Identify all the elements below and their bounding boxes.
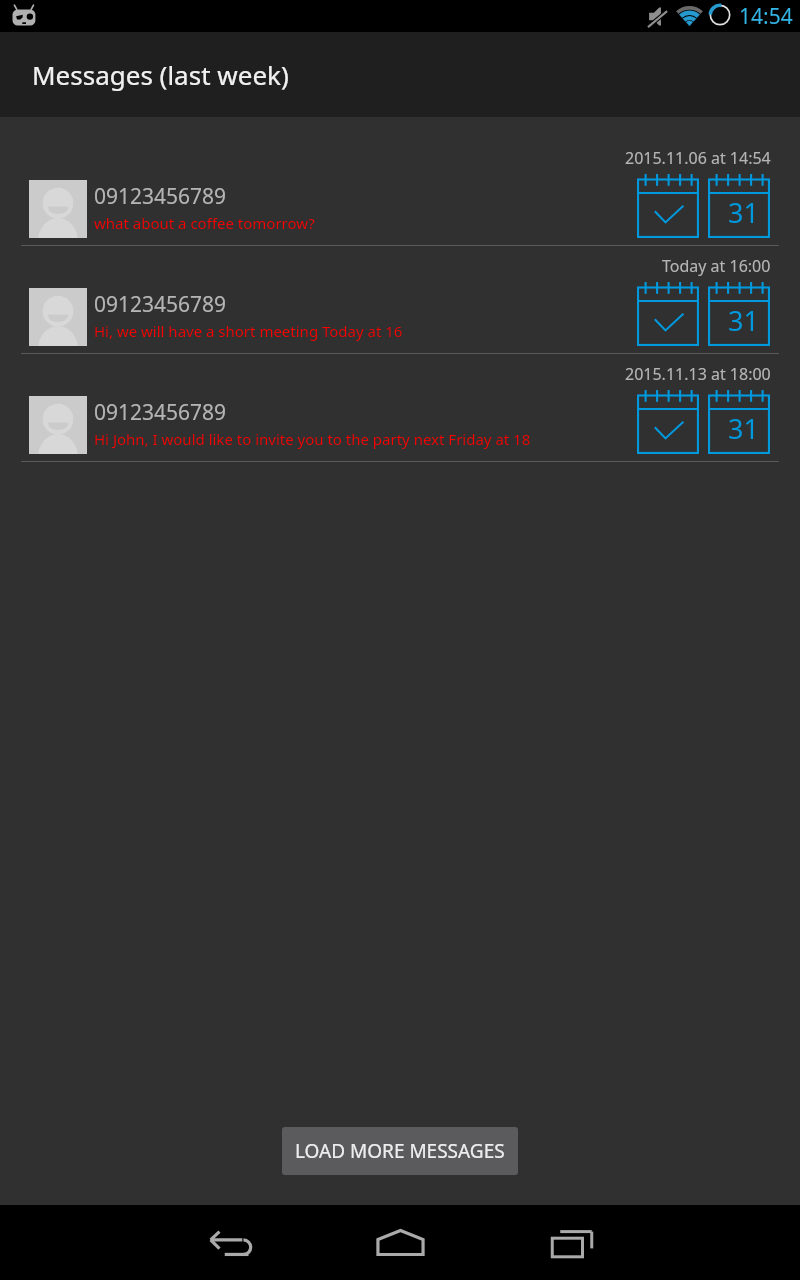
staticText: LOAD MORE MESSAGES	[295, 1138, 505, 1164]
button[interactable]: Add to calendar	[708, 282, 770, 346]
button[interactable]: Today at 16:00	[0, 246, 800, 354]
staticText: 14:54	[739, 2, 793, 31]
button[interactable]: 2015.11.13 at 18:00	[0, 354, 800, 462]
staticText: 31	[728, 410, 759, 447]
button[interactable]: LOAD MORE MESSAGES	[282, 1127, 518, 1175]
button[interactable]: Mark done	[637, 390, 699, 454]
staticText: 09123456789	[94, 290, 227, 319]
staticText: Today at 16:00	[662, 255, 771, 277]
staticText: 31	[728, 194, 759, 231]
staticText: what about a coffee tomorrow?	[94, 213, 315, 233]
button[interactable]: Recent apps	[527, 1205, 617, 1280]
button[interactable]: Back	[185, 1205, 275, 1280]
button[interactable]: Add to calendar	[708, 390, 770, 454]
button[interactable]: Home	[355, 1205, 445, 1280]
staticText: 09123456789	[94, 182, 227, 211]
button[interactable]: Mark done	[637, 174, 699, 238]
staticText: 31	[728, 302, 759, 339]
staticText: Hi, we will have a short meeting Today a…	[94, 321, 403, 341]
button[interactable]: Add to calendar	[708, 174, 770, 238]
staticText: 2015.11.06 at 14:54	[625, 147, 771, 169]
staticText: Hi John, I would like to invite you to t…	[94, 429, 531, 449]
staticText: 2015.11.13 at 18:00	[625, 363, 771, 385]
staticText: Messages (last week)	[32, 57, 289, 92]
button[interactable]: 2015.11.06 at 14:54	[0, 138, 800, 246]
button[interactable]: Mark done	[637, 282, 699, 346]
staticText: 09123456789	[94, 398, 227, 427]
